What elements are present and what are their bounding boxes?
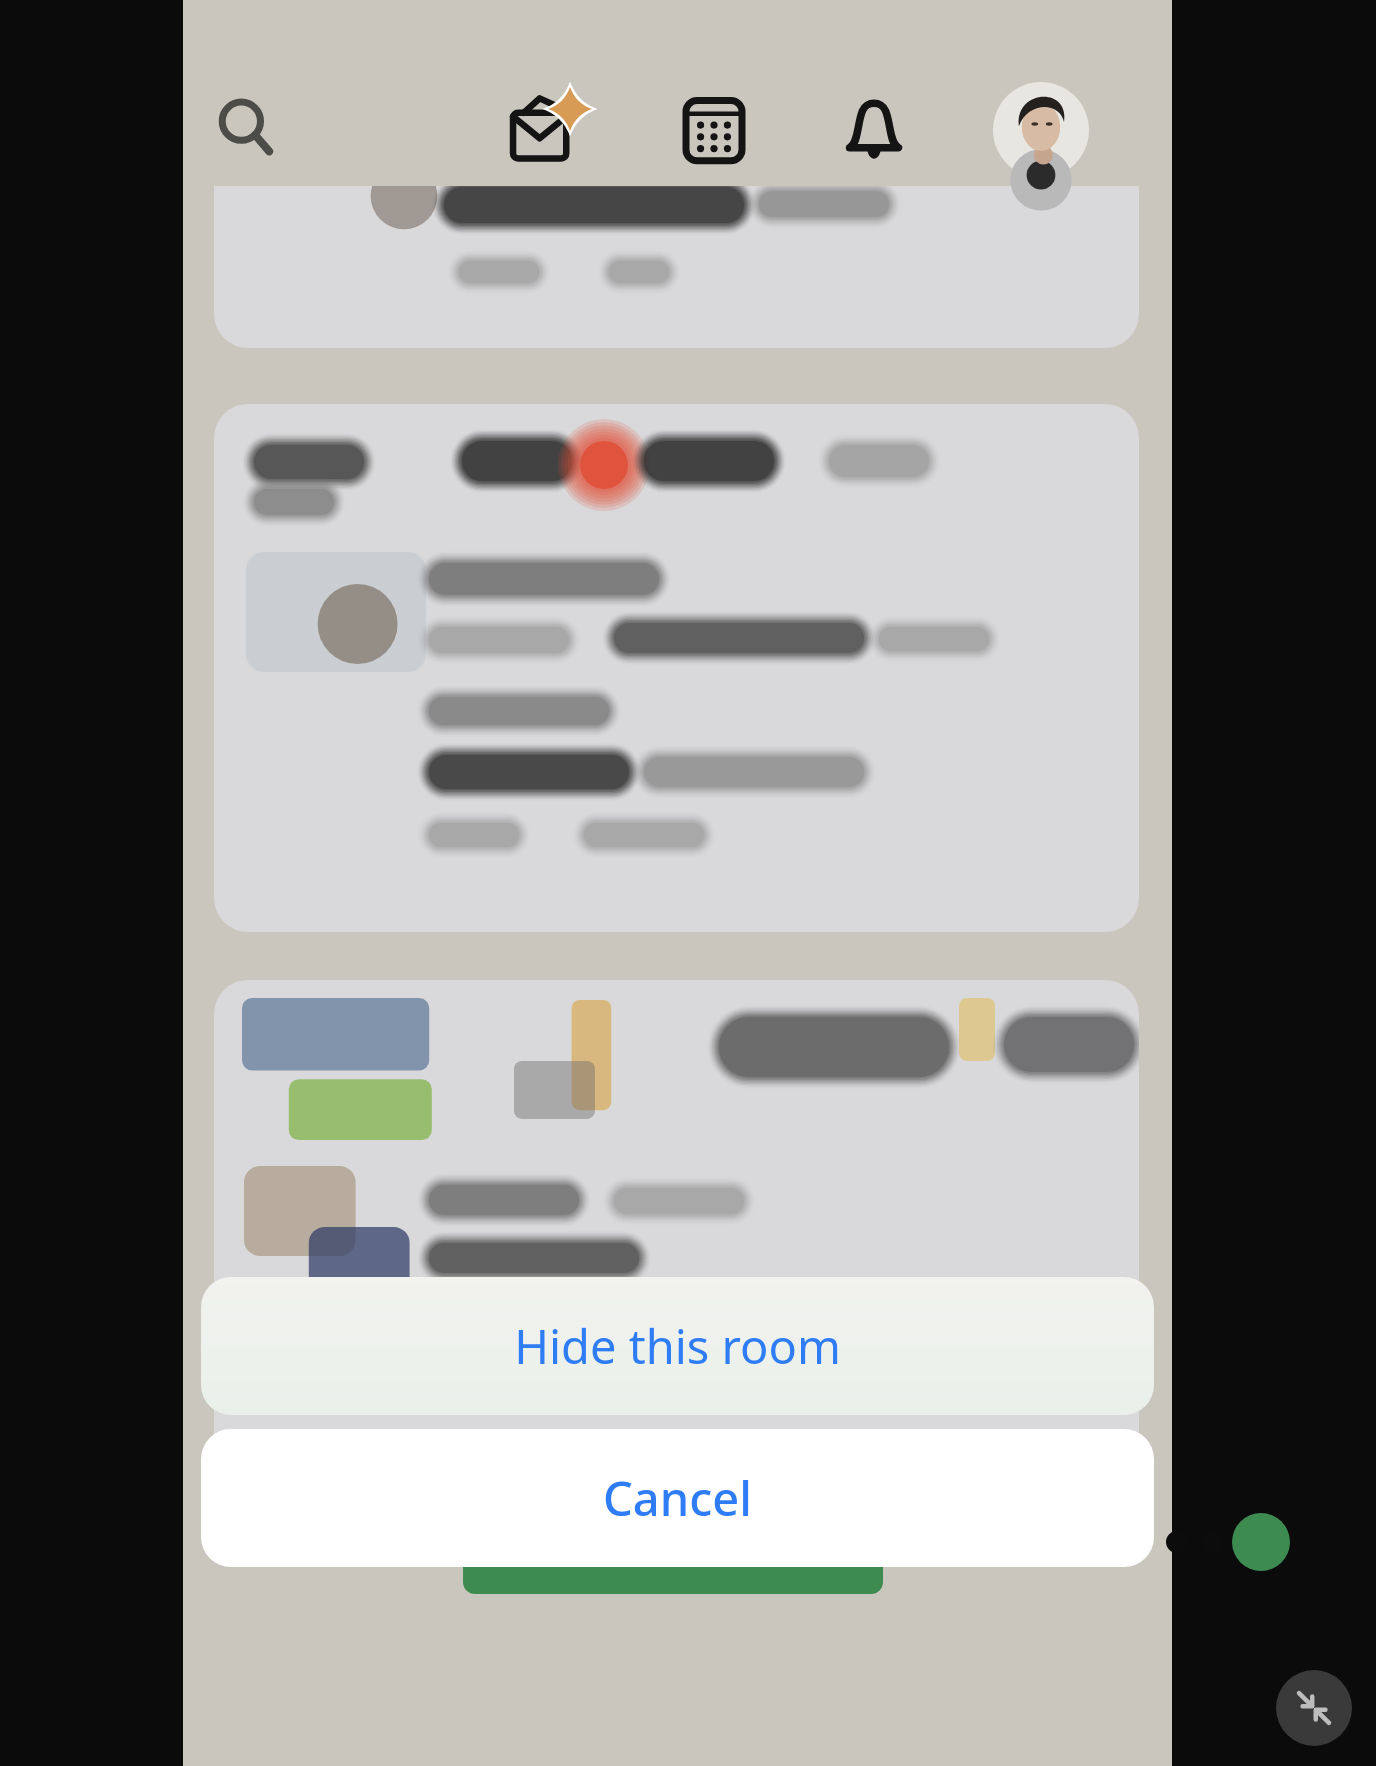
staticText: Cancel [603, 1466, 752, 1530]
button[interactable]: Hide this room [201, 1277, 1154, 1415]
button[interactable]: Notifications [826, 82, 922, 178]
staticText: Hide this room [514, 1314, 841, 1378]
button[interactable]: Search [201, 82, 291, 172]
button[interactable] [214, 980, 1139, 1440]
button[interactable] [214, 404, 1139, 932]
button[interactable]: Profile [989, 78, 1093, 182]
button[interactable]: Start a room [463, 1508, 883, 1594]
button[interactable]: Calendar [666, 82, 762, 178]
button[interactable]: Cancel [201, 1429, 1154, 1567]
button[interactable] [214, 186, 1139, 348]
button[interactable]: Collapse [1276, 1670, 1352, 1746]
button[interactable]: Mail [500, 80, 596, 176]
